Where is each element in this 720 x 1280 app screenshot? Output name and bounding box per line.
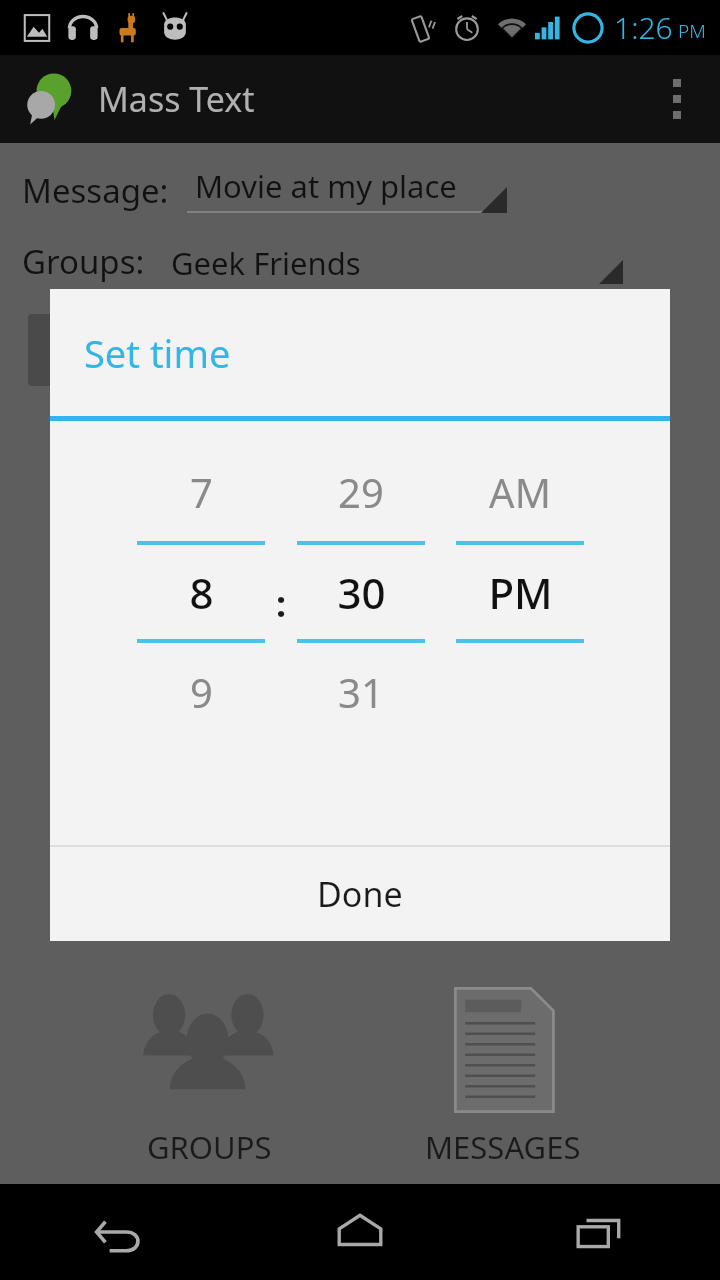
staticText: AM	[489, 465, 551, 519]
staticText: 31	[338, 665, 384, 719]
button[interactable]: 30	[297, 545, 425, 639]
button[interactable]: Geek Friends	[163, 242, 623, 284]
staticText: 30	[337, 564, 386, 621]
button[interactable]: MESSAGES	[417, 972, 589, 1176]
staticText: 8	[189, 564, 214, 621]
staticText: 9	[190, 665, 213, 719]
button[interactable]: 31	[297, 643, 425, 741]
button[interactable]: Movie at my place	[187, 165, 507, 213]
staticText: Geek Friends	[171, 242, 361, 284]
button[interactable]: Recent apps	[520, 1184, 680, 1280]
button[interactable]: 8	[137, 545, 265, 639]
staticText: Done	[317, 871, 403, 917]
button[interactable]: AM	[456, 443, 584, 541]
button[interactable]: 9	[137, 643, 265, 741]
staticText: 29	[338, 465, 384, 519]
staticText: Movie at my place	[195, 165, 457, 207]
button[interactable]: 7	[137, 443, 265, 541]
button[interactable]: PM	[456, 545, 584, 639]
staticText: Message:	[22, 168, 169, 213]
staticText: PM	[678, 18, 706, 44]
staticText: :	[276, 579, 287, 628]
button[interactable]: GROUPS	[131, 972, 287, 1176]
button[interactable]: Home	[280, 1184, 440, 1280]
button[interactable]: 29	[297, 443, 425, 541]
button[interactable]: More options	[634, 55, 720, 143]
staticText: 7	[190, 465, 213, 519]
staticText: 1:26	[614, 7, 673, 48]
staticText: GROUPS	[147, 1126, 272, 1168]
button[interactable]: Done	[50, 847, 670, 941]
button[interactable]	[28, 314, 228, 386]
staticText: Groups:	[22, 239, 145, 284]
button[interactable]: Back	[40, 1184, 200, 1280]
staticText: PM	[488, 564, 553, 621]
staticText: MESSAGES	[425, 1126, 581, 1168]
staticText: Set time	[84, 327, 231, 379]
staticText: Mass Text	[98, 76, 255, 122]
